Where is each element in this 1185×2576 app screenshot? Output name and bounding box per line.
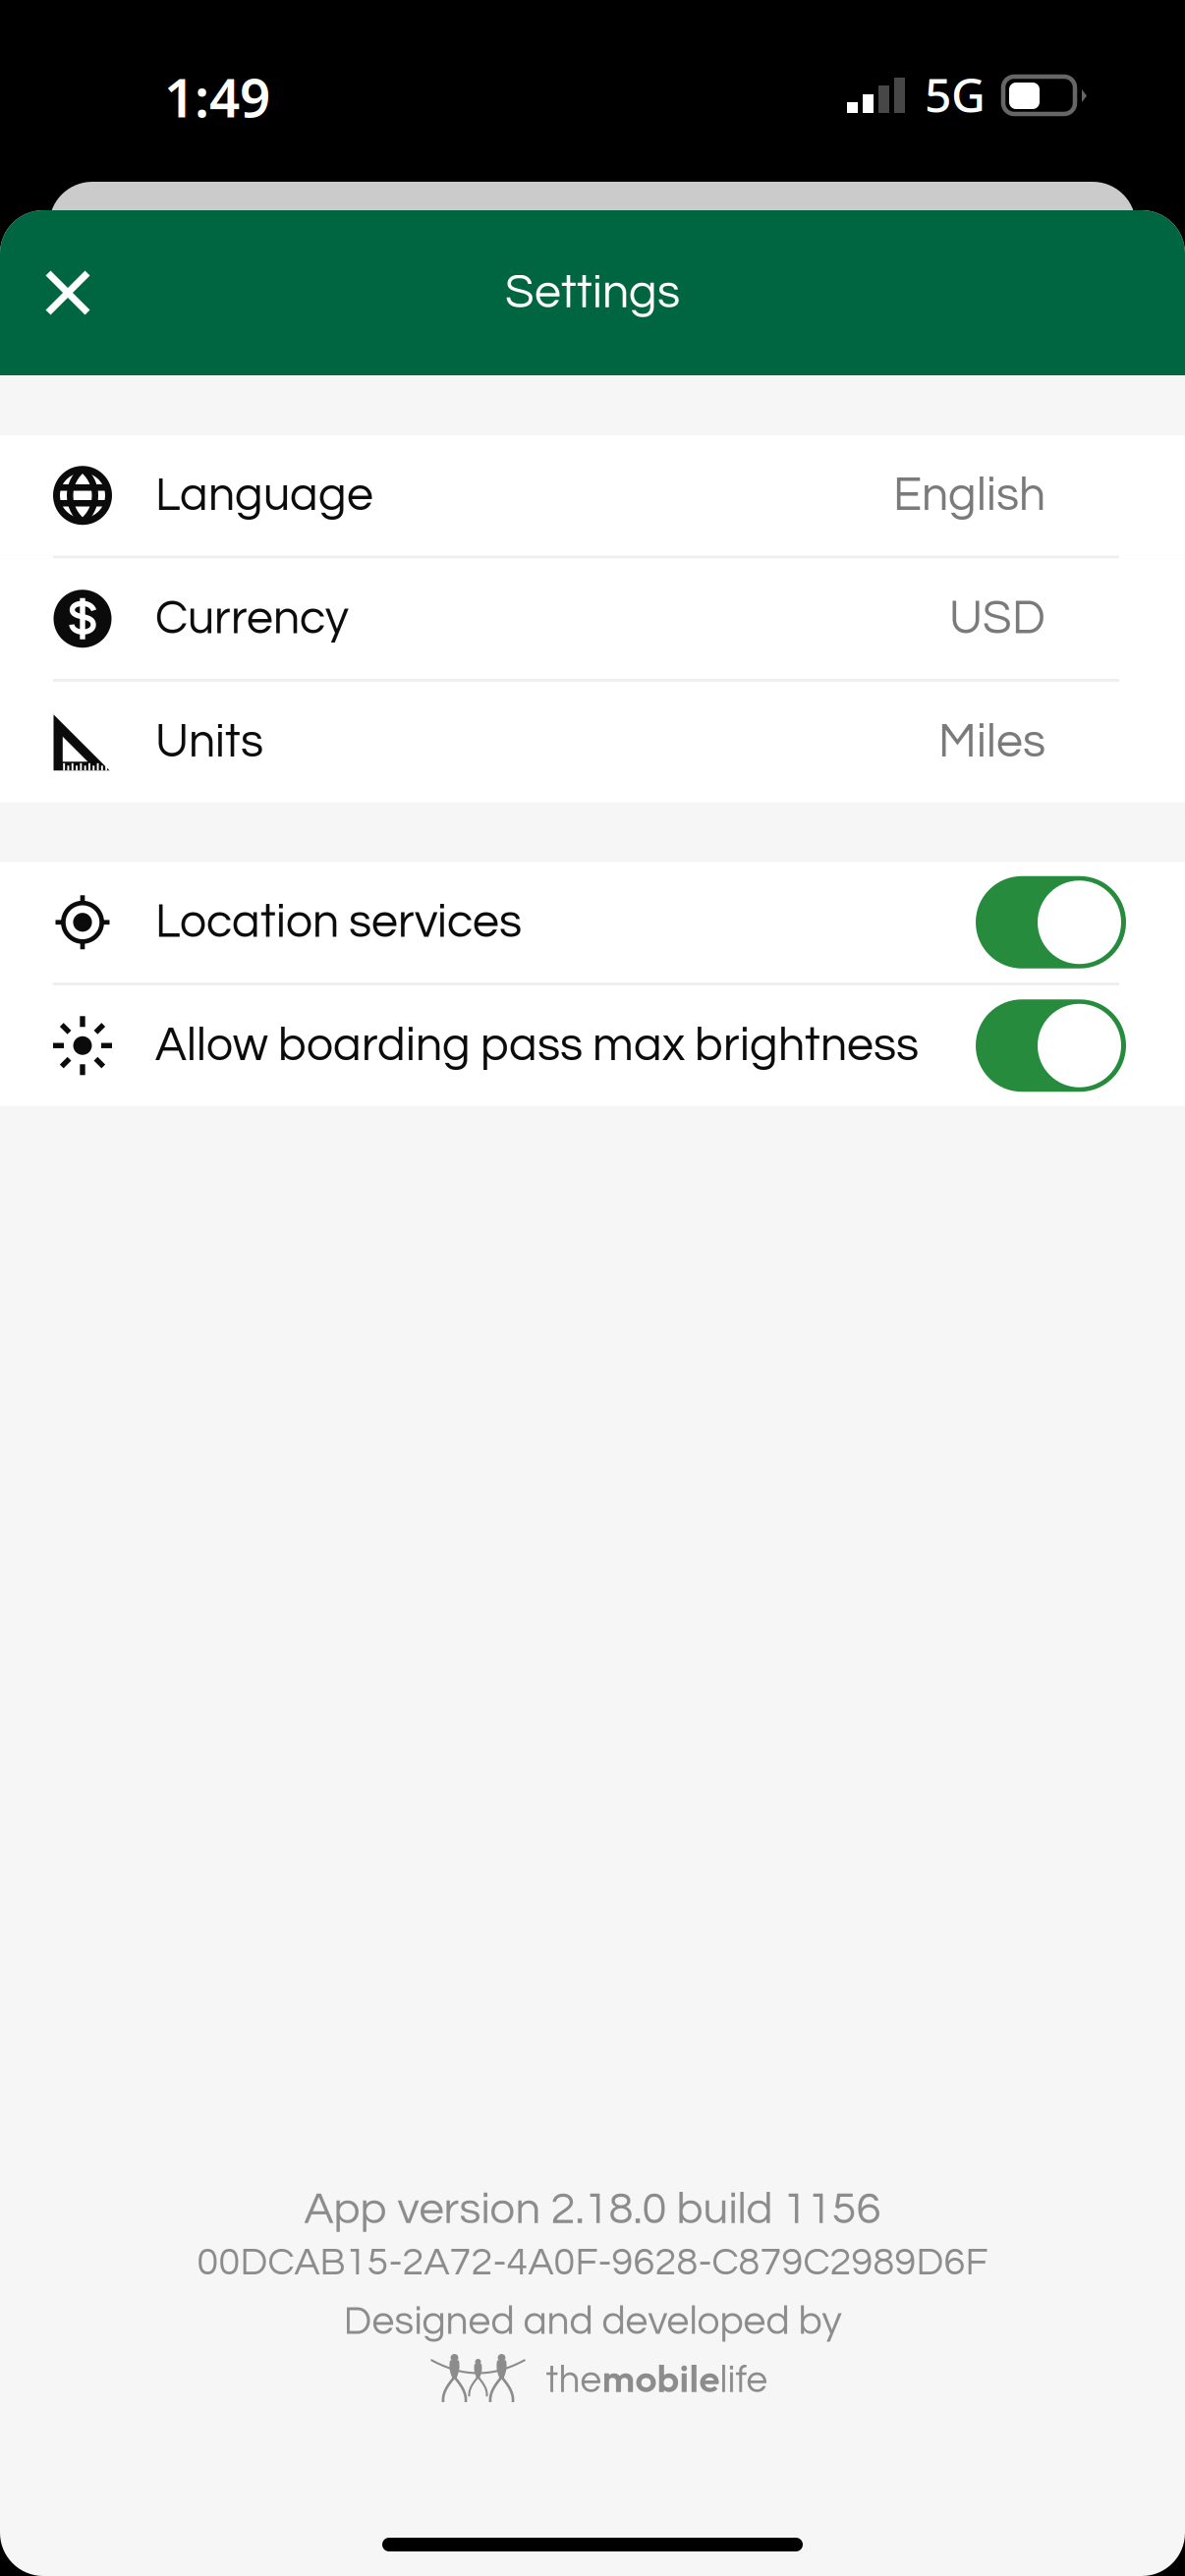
staticText: Location services [155, 898, 522, 946]
staticText: 5G [925, 63, 986, 125]
button[interactable]: Language [0, 435, 1185, 556]
staticText: Allow boarding pass max brightness [155, 1021, 919, 1070]
staticText: Language [155, 471, 373, 520]
staticText: Currency [155, 594, 349, 643]
staticText: Settings [505, 269, 680, 317]
button[interactable]: Close [14, 239, 122, 347]
button[interactable]: Location services [0, 862, 1185, 982]
staticText: themobilelife [546, 2355, 768, 2401]
button[interactable]: Units [0, 682, 1185, 802]
button[interactable]: Allow boarding pass max brightness [0, 985, 1185, 1106]
staticText: Units [155, 718, 263, 766]
staticText: App version 2.18.0 build 1156 [304, 2187, 881, 2233]
staticText: 00DCAB15-2A72-4A0F-9628-C879C2989D6F [197, 2243, 988, 2282]
staticText: Miles [938, 718, 1045, 766]
staticText: USD [949, 594, 1045, 643]
staticText: English [893, 471, 1045, 520]
staticText: Designed and developed by [343, 2301, 842, 2342]
button[interactable]: Currency [0, 559, 1185, 679]
staticText: 1:49 [164, 61, 270, 132]
